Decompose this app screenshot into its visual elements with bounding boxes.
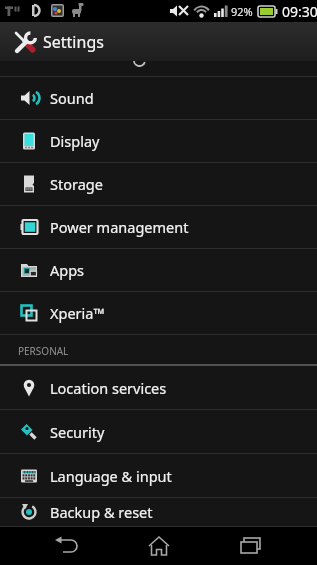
staticText: Xperia™ xyxy=(50,303,105,323)
staticText: Sound xyxy=(50,88,94,108)
staticText: Backup & reset xyxy=(50,502,153,522)
staticText: 09:30 xyxy=(282,2,317,21)
button[interactable]: Backup & reset xyxy=(0,498,317,527)
button[interactable]: Power management xyxy=(0,206,317,249)
button[interactable] xyxy=(224,527,278,565)
staticText: 92% xyxy=(231,4,253,19)
staticText: Power management xyxy=(50,217,189,237)
button[interactable]: Sound xyxy=(0,77,317,120)
button[interactable]: Security xyxy=(0,410,317,454)
staticText: Apps xyxy=(50,260,85,280)
button[interactable]: Storage xyxy=(0,163,317,206)
button[interactable]: Location services xyxy=(0,366,317,410)
staticText: PERSONAL xyxy=(18,344,69,358)
staticText: Security xyxy=(50,422,105,442)
button[interactable]: Apps xyxy=(0,249,317,292)
staticText: Display xyxy=(50,131,100,151)
button[interactable]: Display xyxy=(0,120,317,163)
staticText: Language & input xyxy=(50,466,172,486)
staticText: Settings xyxy=(43,31,104,53)
staticText: Location services xyxy=(50,378,167,398)
staticText: Storage xyxy=(50,174,103,194)
button[interactable] xyxy=(132,527,186,565)
button[interactable]: Xperia™ xyxy=(0,292,317,335)
button[interactable] xyxy=(39,527,93,565)
button[interactable]: Language & input xyxy=(0,454,317,498)
